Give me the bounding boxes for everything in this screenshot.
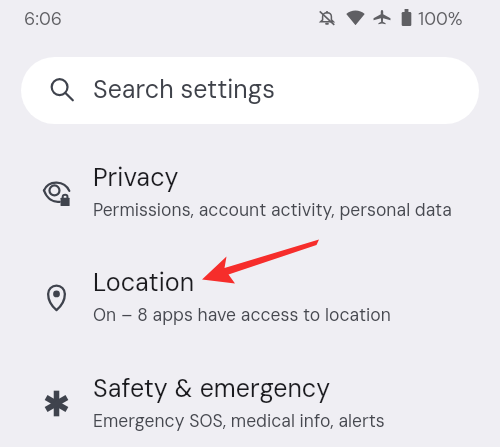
button[interactable]: Search settings bbox=[21, 57, 479, 124]
staticText: Safety & emergency bbox=[93, 372, 331, 405]
staticText: On – 8 apps have access to location bbox=[93, 304, 391, 327]
staticText: Search settings bbox=[93, 73, 275, 106]
staticText: 100% bbox=[418, 7, 463, 30]
button[interactable]: Safety & emergency bbox=[0, 356, 500, 447]
staticText: Location bbox=[93, 266, 195, 299]
staticText: 6:06 bbox=[24, 7, 63, 30]
staticText: Privacy bbox=[93, 161, 179, 194]
button[interactable]: Privacy bbox=[0, 145, 500, 245]
button[interactable]: Location bbox=[0, 250, 500, 350]
staticText: Permissions, account activity, personal … bbox=[93, 199, 452, 222]
staticText: Emergency SOS, medical info, alerts bbox=[93, 410, 385, 433]
